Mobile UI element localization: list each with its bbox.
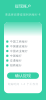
staticText: 交通银行 (10, 59, 22, 62)
button[interactable]: 中国银行 (4, 53, 42, 58)
button[interactable]: 招商银行 (4, 63, 42, 68)
staticText: 中国银行 (10, 54, 22, 57)
button[interactable]: 中国建设银行 (4, 44, 42, 49)
staticText: 中国建设银行 (10, 45, 28, 48)
button[interactable]: 中国农业银行 (4, 49, 42, 53)
staticText: 提现账户 (15, 4, 31, 8)
button[interactable]: 交通银行 (4, 58, 42, 63)
staticText: 请选择您要提现到的银行卡 (5, 13, 41, 16)
staticText: 中国农业银行 (10, 49, 28, 53)
staticText: 确认提现 (15, 73, 31, 78)
button[interactable]: 确认提现 (7, 72, 39, 79)
staticText: 招商银行 (10, 64, 22, 67)
staticText: 到账时间 1-3 个工作日 (7, 82, 38, 86)
staticText: 中国工商银行 (10, 40, 28, 43)
button[interactable]: 中国工商银行 (4, 39, 42, 44)
